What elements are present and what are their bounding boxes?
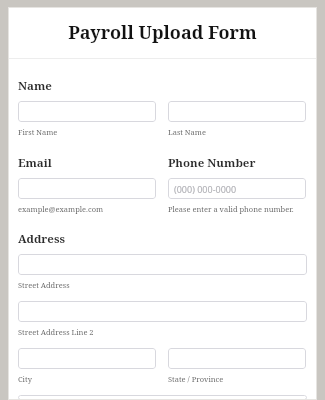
button[interactable]	[18, 348, 156, 369]
staticText: First Name	[18, 127, 58, 137]
button[interactable]	[18, 178, 156, 199]
button[interactable]: Postal / Zip Code	[18, 395, 307, 400]
button[interactable]	[168, 348, 306, 369]
staticText: Email	[18, 155, 52, 171]
staticText: Street Address	[18, 280, 70, 290]
staticText: Payroll Upload Form	[68, 20, 257, 45]
button[interactable]	[168, 101, 306, 122]
button[interactable]	[18, 101, 156, 122]
button[interactable]	[18, 254, 307, 275]
staticText: Please enter a valid phone number.	[168, 204, 294, 214]
staticText: example@example.com	[18, 204, 104, 214]
button[interactable]: (000) 000-0000	[168, 178, 306, 199]
staticText: Street Address Line 2	[18, 327, 94, 337]
staticText: Address	[18, 231, 66, 247]
staticText: Name	[18, 78, 52, 94]
staticText: (000) 000-0000	[174, 183, 237, 195]
staticText: Last Name	[168, 127, 206, 137]
staticText: City	[18, 374, 32, 384]
staticText: Phone Number	[168, 155, 256, 171]
staticText: State / Province	[168, 374, 224, 384]
button[interactable]	[18, 301, 307, 322]
